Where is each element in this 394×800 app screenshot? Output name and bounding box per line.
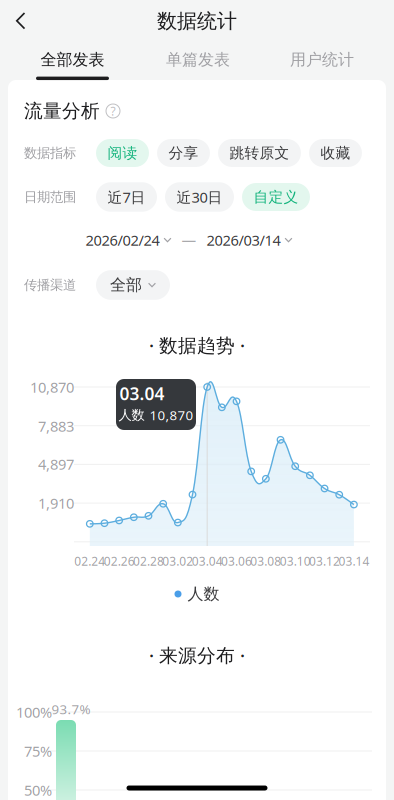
button[interactable]: 收藏 [309,139,362,167]
staticText: 03.06 [221,553,252,569]
staticText: 收藏 [320,144,350,162]
staticText: 03.02 [162,553,193,569]
button[interactable]: 单篇发表 [143,50,253,80]
staticText: · 数据趋势 · [149,333,245,357]
staticText: 4,897 [38,454,74,474]
staticText: 03.04 [192,553,223,569]
staticText: 用户统计 [290,50,354,70]
staticText: 自定义 [253,188,298,206]
staticText: 1,910 [38,493,74,513]
staticText: 阅读 [107,144,137,162]
staticText: 流量分析 [24,99,100,122]
staticText: 02.24 [74,553,105,569]
button[interactable]: 返回 [3,0,38,42]
button[interactable]: 说明 [105,103,121,119]
staticText: 2026/03/14 [206,230,280,250]
button[interactable]: 近7日 [96,182,157,212]
staticText: 跳转原文 [229,144,289,162]
staticText: 03.08 [250,553,281,569]
staticText: — [181,230,196,250]
staticText: 日期范围 [24,189,76,205]
staticText: 10,870 [149,406,193,424]
staticText: 分享 [168,144,198,162]
staticText: 数据统计 [157,9,237,33]
staticText: 03.04 [119,382,164,405]
button[interactable]: 自定义 [242,183,310,211]
staticText: 100% [16,702,52,722]
staticText: 03.14 [338,553,369,569]
staticText: 传播渠道 [24,277,76,293]
staticText: · 来源分布 · [149,643,245,667]
staticText: 全部发表 [40,50,104,70]
staticText: 03.10 [280,553,311,569]
staticText: 单篇发表 [166,50,230,70]
staticText: 7,883 [38,416,74,436]
button[interactable]: 阅读 [96,139,149,167]
staticText: 近30日 [176,187,222,207]
staticText: 全部 [110,275,142,295]
staticText: 人数 [187,584,219,604]
staticText: 数据指标 [24,145,76,161]
button[interactable]: 2026/02/24 [85,230,171,250]
staticText: 75% [24,741,52,761]
button[interactable]: 2026/03/14 [206,230,292,250]
staticText: 50% [24,780,52,800]
staticText: ? [110,103,115,119]
button[interactable]: 用户统计 [267,50,377,80]
staticText: 02.26 [104,553,135,569]
staticText: 近7日 [107,187,145,207]
staticText: 02.28 [133,553,164,569]
button[interactable]: 全部 [96,270,170,300]
button[interactable]: 近30日 [165,182,234,212]
staticText: 03.12 [309,553,340,569]
button[interactable]: 跳转原文 [218,139,301,167]
staticText: 人数 [118,407,144,423]
staticText: 2026/02/24 [85,230,159,250]
staticText: 93.7% [51,700,90,718]
button[interactable]: 分享 [157,139,210,167]
staticText: 10,870 [30,377,74,397]
button[interactable]: 全部发表 [17,50,127,80]
